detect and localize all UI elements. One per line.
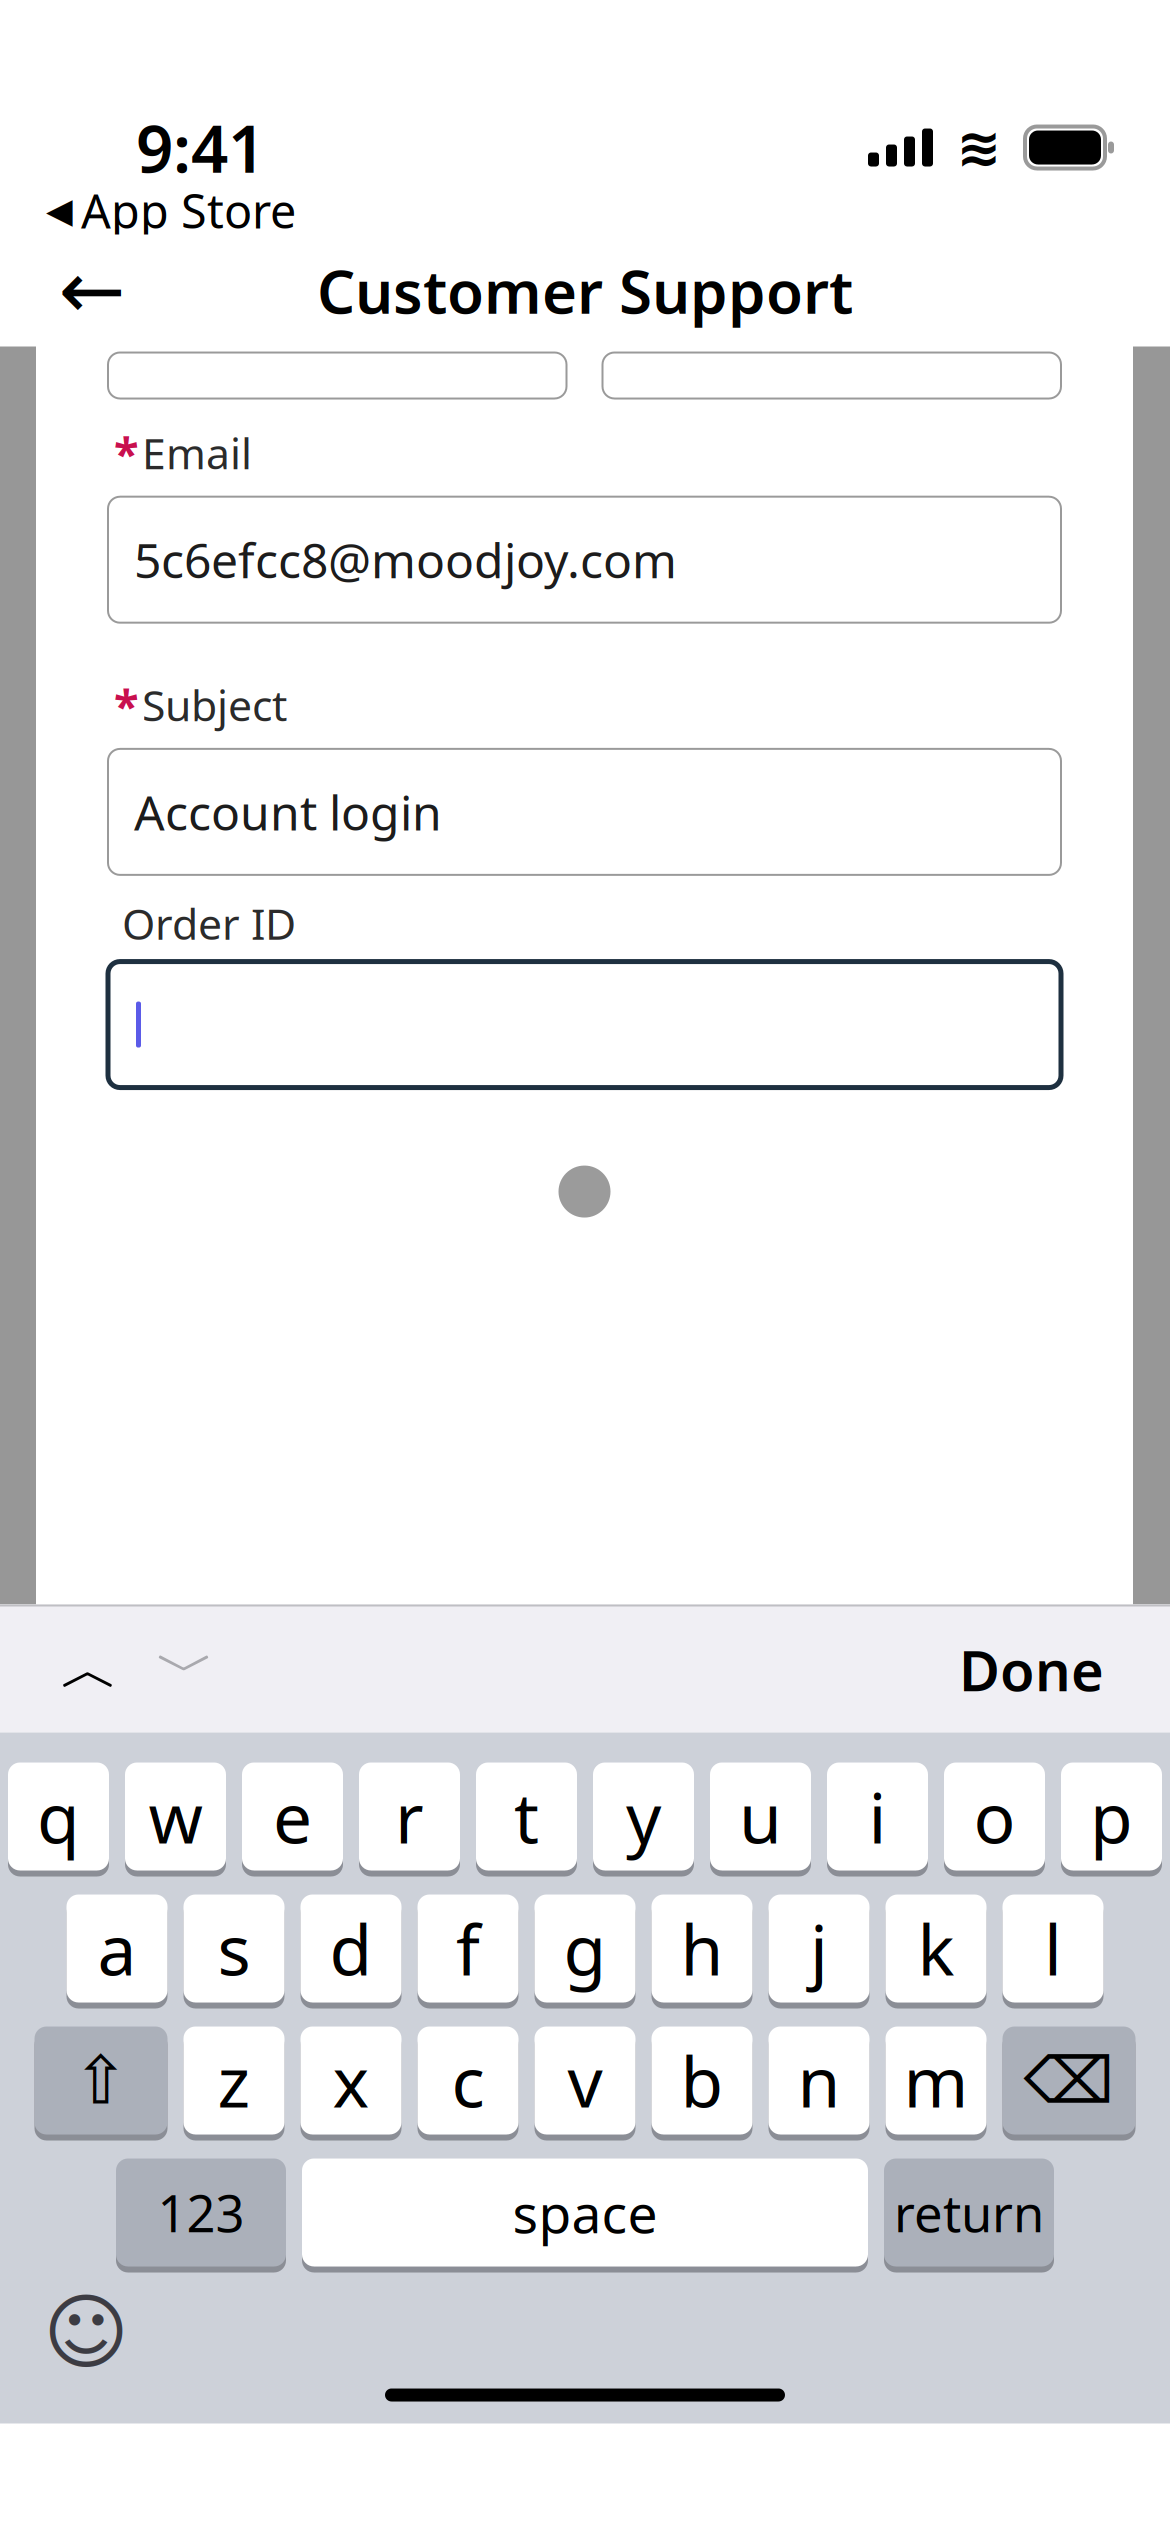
staticText: ﹀ xyxy=(156,1633,215,1706)
button[interactable]: ◀ xyxy=(38,177,304,243)
staticText: w xyxy=(148,1770,202,1863)
button[interactable]: j xyxy=(768,1894,869,2008)
staticText: o xyxy=(973,1770,1015,1863)
staticText: f xyxy=(456,1902,480,1995)
button[interactable]: u xyxy=(710,1762,811,1876)
button[interactable]: q xyxy=(8,1762,109,1876)
staticText: i xyxy=(868,1770,886,1863)
staticText: b xyxy=(680,2034,723,2127)
staticText: y xyxy=(626,1770,661,1863)
staticText: ☺ xyxy=(43,2286,129,2379)
staticText: h xyxy=(680,1902,723,1995)
button[interactable]: t xyxy=(476,1762,577,1876)
staticText: Subject xyxy=(142,676,287,733)
staticText: v xyxy=(567,2034,602,2127)
staticText: Account login xyxy=(134,780,442,844)
button[interactable]: k xyxy=(885,1894,986,2008)
button[interactable]: space xyxy=(302,2158,868,2272)
button[interactable]: p xyxy=(1061,1762,1162,1876)
button[interactable]: z xyxy=(183,2026,284,2140)
button[interactable]: l xyxy=(1002,1894,1103,2008)
staticText: q xyxy=(37,1770,80,1863)
staticText: Customer Support xyxy=(317,251,853,330)
button[interactable]: return xyxy=(884,2158,1054,2272)
staticText: ◀ xyxy=(46,191,73,230)
staticText: * xyxy=(114,675,139,735)
staticText: App Store xyxy=(81,179,296,241)
staticText: ⇧ xyxy=(73,2043,129,2118)
staticText: z xyxy=(217,2034,250,2127)
staticText: space xyxy=(512,2177,657,2248)
staticText: Order ID xyxy=(122,895,296,952)
staticText: c xyxy=(451,2034,484,2127)
button[interactable]: x xyxy=(300,2026,401,2140)
staticText: 9:41 xyxy=(136,104,265,191)
button[interactable]: w xyxy=(125,1762,226,1876)
staticText: k xyxy=(917,1902,954,1995)
button[interactable] xyxy=(108,962,1061,1088)
staticText: l xyxy=(1044,1902,1062,1995)
button[interactable]: a xyxy=(66,1894,167,2008)
staticText: Done xyxy=(959,1632,1104,1707)
button[interactable]: n xyxy=(768,2026,869,2140)
staticText: n xyxy=(797,2034,840,2127)
button[interactable]: 123 xyxy=(116,2158,286,2272)
staticText: * xyxy=(114,422,139,483)
button[interactable]: s xyxy=(183,1894,284,2008)
staticText: ≋ xyxy=(956,117,1001,178)
button[interactable]: r xyxy=(359,1762,460,1876)
button[interactable]: e xyxy=(242,1762,343,1876)
button[interactable]: Delete xyxy=(1002,2026,1135,2140)
button[interactable]: h xyxy=(651,1894,752,2008)
button[interactable]: f xyxy=(417,1894,518,2008)
button[interactable]: i xyxy=(827,1762,928,1876)
button[interactable]: d xyxy=(300,1894,401,2008)
button[interactable]: c xyxy=(417,2026,518,2140)
button[interactable]: m xyxy=(885,2026,986,2140)
staticText: d xyxy=(329,1902,372,1995)
staticText: ︿ xyxy=(60,1633,119,1706)
staticText: ⌫ xyxy=(1023,2044,1114,2117)
staticText: a xyxy=(97,1902,136,1995)
staticText: u xyxy=(739,1770,782,1863)
staticText: p xyxy=(1090,1770,1133,1863)
button[interactable]: Next field xyxy=(138,1621,234,1717)
button[interactable]: v xyxy=(534,2026,635,2140)
button[interactable]: Back xyxy=(44,242,140,338)
staticText: ← xyxy=(58,245,125,336)
staticText: g xyxy=(563,1902,606,1995)
staticText: s xyxy=(217,1902,250,1995)
button[interactable]: y xyxy=(593,1762,694,1876)
staticText: 5c6efcc8@moodjoy.com xyxy=(134,528,677,591)
staticText: 123 xyxy=(157,2179,244,2246)
button[interactable]: Shift xyxy=(34,2026,167,2140)
button[interactable]: g xyxy=(534,1894,635,2008)
button[interactable]: o xyxy=(944,1762,1045,1876)
staticText: e xyxy=(273,1770,312,1863)
staticText: return xyxy=(894,2179,1044,2246)
button[interactable]: Previous field xyxy=(42,1621,138,1717)
button[interactable]: Emoji xyxy=(38,2284,134,2380)
staticText: t xyxy=(514,1770,539,1863)
staticText: r xyxy=(395,1770,424,1863)
staticText: m xyxy=(903,2034,968,2127)
button[interactable]: Done xyxy=(939,1622,1124,1717)
button[interactable]: b xyxy=(651,2026,752,2140)
staticText: j xyxy=(810,1902,828,1995)
staticText: Email xyxy=(142,424,252,481)
staticText: x xyxy=(332,2034,369,2127)
